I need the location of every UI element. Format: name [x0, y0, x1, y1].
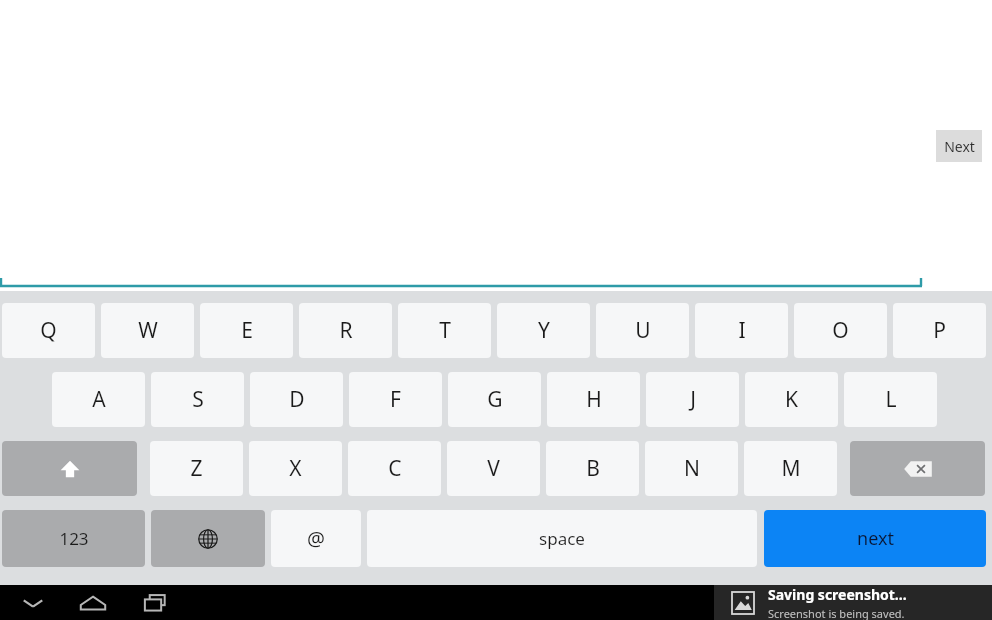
button[interactable]: Home [72, 585, 114, 620]
button[interactable]: R [299, 303, 392, 358]
staticText: O [832, 316, 849, 345]
staticText: B [586, 454, 600, 483]
staticText: D [289, 385, 305, 414]
button[interactable]: U [596, 303, 689, 358]
staticText: W [138, 316, 158, 345]
staticText: L [885, 385, 897, 414]
button[interactable]: E [200, 303, 293, 358]
staticText: K [785, 385, 798, 414]
button[interactable]: H [547, 372, 640, 427]
staticText: C [388, 454, 402, 483]
button[interactable]: W [101, 303, 194, 358]
button[interactable]: J [646, 372, 739, 427]
button[interactable]: F [349, 372, 442, 427]
staticText: @ [307, 525, 325, 552]
button[interactable]: M [744, 441, 837, 496]
button[interactable]: V [447, 441, 540, 496]
staticText: E [241, 316, 253, 345]
button[interactable]: 123 [2, 510, 145, 567]
staticText: next [857, 526, 894, 551]
staticText: P [933, 316, 946, 345]
staticText: Screenshot is being saved. [768, 606, 905, 620]
staticText: I [738, 316, 746, 345]
button[interactable]: Hide keyboard [12, 585, 54, 620]
button[interactable]: B [546, 441, 639, 496]
button[interactable]: O [794, 303, 887, 358]
button[interactable]: Recent apps [134, 585, 176, 620]
button[interactable]: Change keyboard [151, 510, 265, 567]
button[interactable]: Saving screenshot… [714, 585, 992, 620]
staticText: Z [190, 454, 203, 483]
staticText: H [586, 385, 602, 414]
staticText: 123 [59, 527, 89, 550]
button[interactable]: S [151, 372, 244, 427]
button[interactable]: D [250, 372, 343, 427]
staticText: Q [40, 316, 57, 345]
button[interactable]: A [52, 372, 145, 427]
button[interactable]: I [695, 303, 788, 358]
button[interactable]: space [367, 510, 757, 567]
button[interactable]: Y [497, 303, 590, 358]
button[interactable]: P [893, 303, 986, 358]
staticText: M [781, 454, 801, 483]
button[interactable]: Backspace [850, 441, 985, 496]
button[interactable]: L [844, 372, 937, 427]
button[interactable]: @ [271, 510, 361, 567]
staticText: Y [538, 316, 550, 345]
button[interactable]: T [398, 303, 491, 358]
button[interactable]: Shift [2, 441, 137, 496]
button[interactable]: Q [2, 303, 95, 358]
staticText: Next [944, 137, 975, 156]
staticText: J [690, 385, 696, 414]
button[interactable]: Next [936, 130, 982, 162]
button[interactable]: next [764, 510, 986, 567]
staticText: X [289, 454, 302, 483]
button[interactable]: K [745, 372, 838, 427]
staticText: A [92, 385, 106, 414]
button[interactable]: C [348, 441, 441, 496]
staticText: T [439, 316, 451, 345]
staticText: Saving screenshot… [768, 585, 907, 604]
staticText: F [390, 385, 401, 414]
staticText: R [339, 316, 353, 345]
staticText: space [539, 527, 585, 550]
button[interactable]: X [249, 441, 342, 496]
button[interactable]: G [448, 372, 541, 427]
staticText: S [192, 385, 204, 414]
staticText: G [487, 385, 503, 414]
staticText: V [487, 454, 500, 483]
staticText: N [684, 454, 700, 483]
button[interactable]: Z [150, 441, 243, 496]
staticText: U [635, 316, 651, 345]
button[interactable]: N [645, 441, 738, 496]
